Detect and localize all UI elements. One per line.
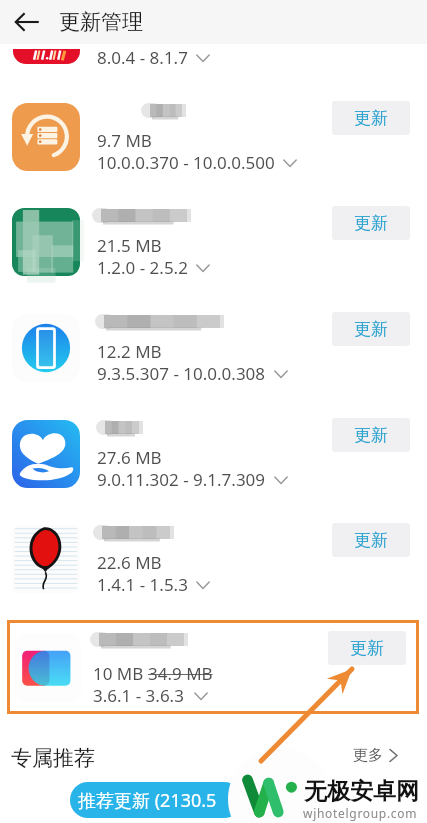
staticText: 9.7 MB: [97, 129, 152, 152]
button[interactable]: 更新: [332, 418, 410, 452]
button[interactable]: 更新: [328, 631, 406, 665]
button[interactable]: 21.5 MB: [0, 202, 427, 299]
staticText: 3.6.1 - 3.6.3: [93, 684, 184, 707]
staticText: 1.4.1 - 1.5.3: [97, 573, 188, 596]
button[interactable]: 10 MB: [7, 620, 419, 714]
button[interactable]: 9.7 MB: [0, 97, 427, 194]
staticText: 12.2 MB: [97, 340, 162, 363]
staticText: 更新: [354, 319, 388, 340]
staticText: 更新: [354, 530, 388, 551]
staticText: 8.0.4 - 8.1.7: [97, 46, 188, 69]
staticText: 10.0.0.370 - 10.0.0.500: [97, 151, 275, 174]
staticText: 更新管理: [59, 9, 143, 35]
staticText: 专属推荐: [11, 745, 95, 771]
staticText: 推荐更新 (2130.5: [78, 788, 217, 813]
button[interactable]: Back: [15, 12, 39, 32]
button[interactable]: 更多: [353, 746, 398, 765]
button[interactable]: 27.6 MB: [0, 414, 427, 511]
staticText: 22.6 MB: [97, 551, 162, 574]
button[interactable]: 22.6 MB: [0, 519, 427, 616]
button[interactable]: 更新: [332, 101, 410, 135]
staticText: 更多: [353, 746, 383, 765]
staticText: 27.6 MB: [97, 446, 162, 469]
button[interactable]: 更新: [332, 523, 410, 557]
staticText: 更新: [350, 638, 384, 659]
staticText: 9.3.5.307 - 10.0.0.308: [97, 362, 266, 385]
staticText: 1.2.0 - 2.5.2: [97, 256, 188, 279]
staticText: 更新: [354, 108, 388, 129]
staticText: 10 MB: [93, 662, 148, 685]
staticText: 更新: [354, 425, 388, 446]
staticText: wjhotelgroup.com: [303, 805, 418, 821]
staticText: 21.5 MB: [97, 234, 162, 257]
button[interactable]: 推荐更新 (2130.5: [70, 782, 242, 818]
staticText: 34.9 MB: [148, 662, 213, 685]
staticText: 无极安卓网: [304, 777, 419, 806]
staticText: 更新: [354, 213, 388, 234]
staticText: 9.0.11.302 - 9.1.7.309: [97, 468, 266, 491]
button[interactable]: 12.2 MB: [0, 308, 427, 405]
button[interactable]: 更新: [332, 312, 410, 346]
button[interactable]: 更新: [332, 206, 410, 240]
button[interactable]: 8.0.4 - 8.1.7: [0, 44, 427, 84]
